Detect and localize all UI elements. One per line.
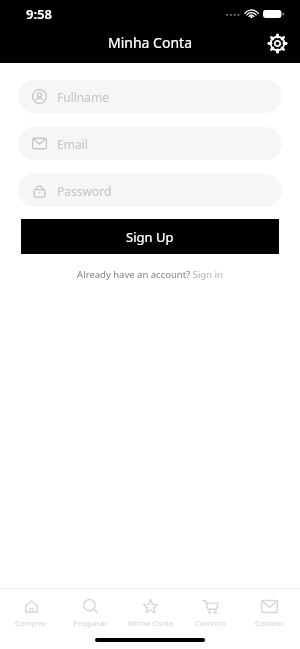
button[interactable]: Pesquisar [61, 596, 119, 630]
button[interactable]: Comprar [2, 596, 60, 630]
staticText: Sign Up [126, 228, 174, 246]
staticText: Already have an account? Sign in [77, 268, 223, 281]
staticText: Carrinho [195, 618, 226, 628]
button[interactable]: Carrinho [181, 596, 239, 630]
staticText: Comprar [15, 618, 47, 628]
staticText: Fullname [57, 89, 109, 105]
button[interactable]: Settings [260, 26, 294, 60]
button[interactable]: Password [18, 174, 282, 207]
staticText: Email [57, 136, 88, 152]
button[interactable]: Already have an account? Sign in [73, 266, 227, 283]
button[interactable]: Sign Up [21, 219, 279, 254]
staticText: 9:58 [26, 5, 52, 23]
button[interactable]: Email [18, 127, 282, 160]
staticText: Minha Conta [108, 33, 192, 52]
staticText: Password [57, 183, 112, 199]
button[interactable]: Minha Conta [121, 596, 179, 630]
button[interactable]: Fullname [18, 80, 282, 113]
staticText: Contato [255, 618, 284, 628]
button[interactable]: Contato [240, 596, 298, 630]
staticText: Pesquisar [73, 618, 108, 628]
staticText: Minha Conta [128, 618, 173, 628]
